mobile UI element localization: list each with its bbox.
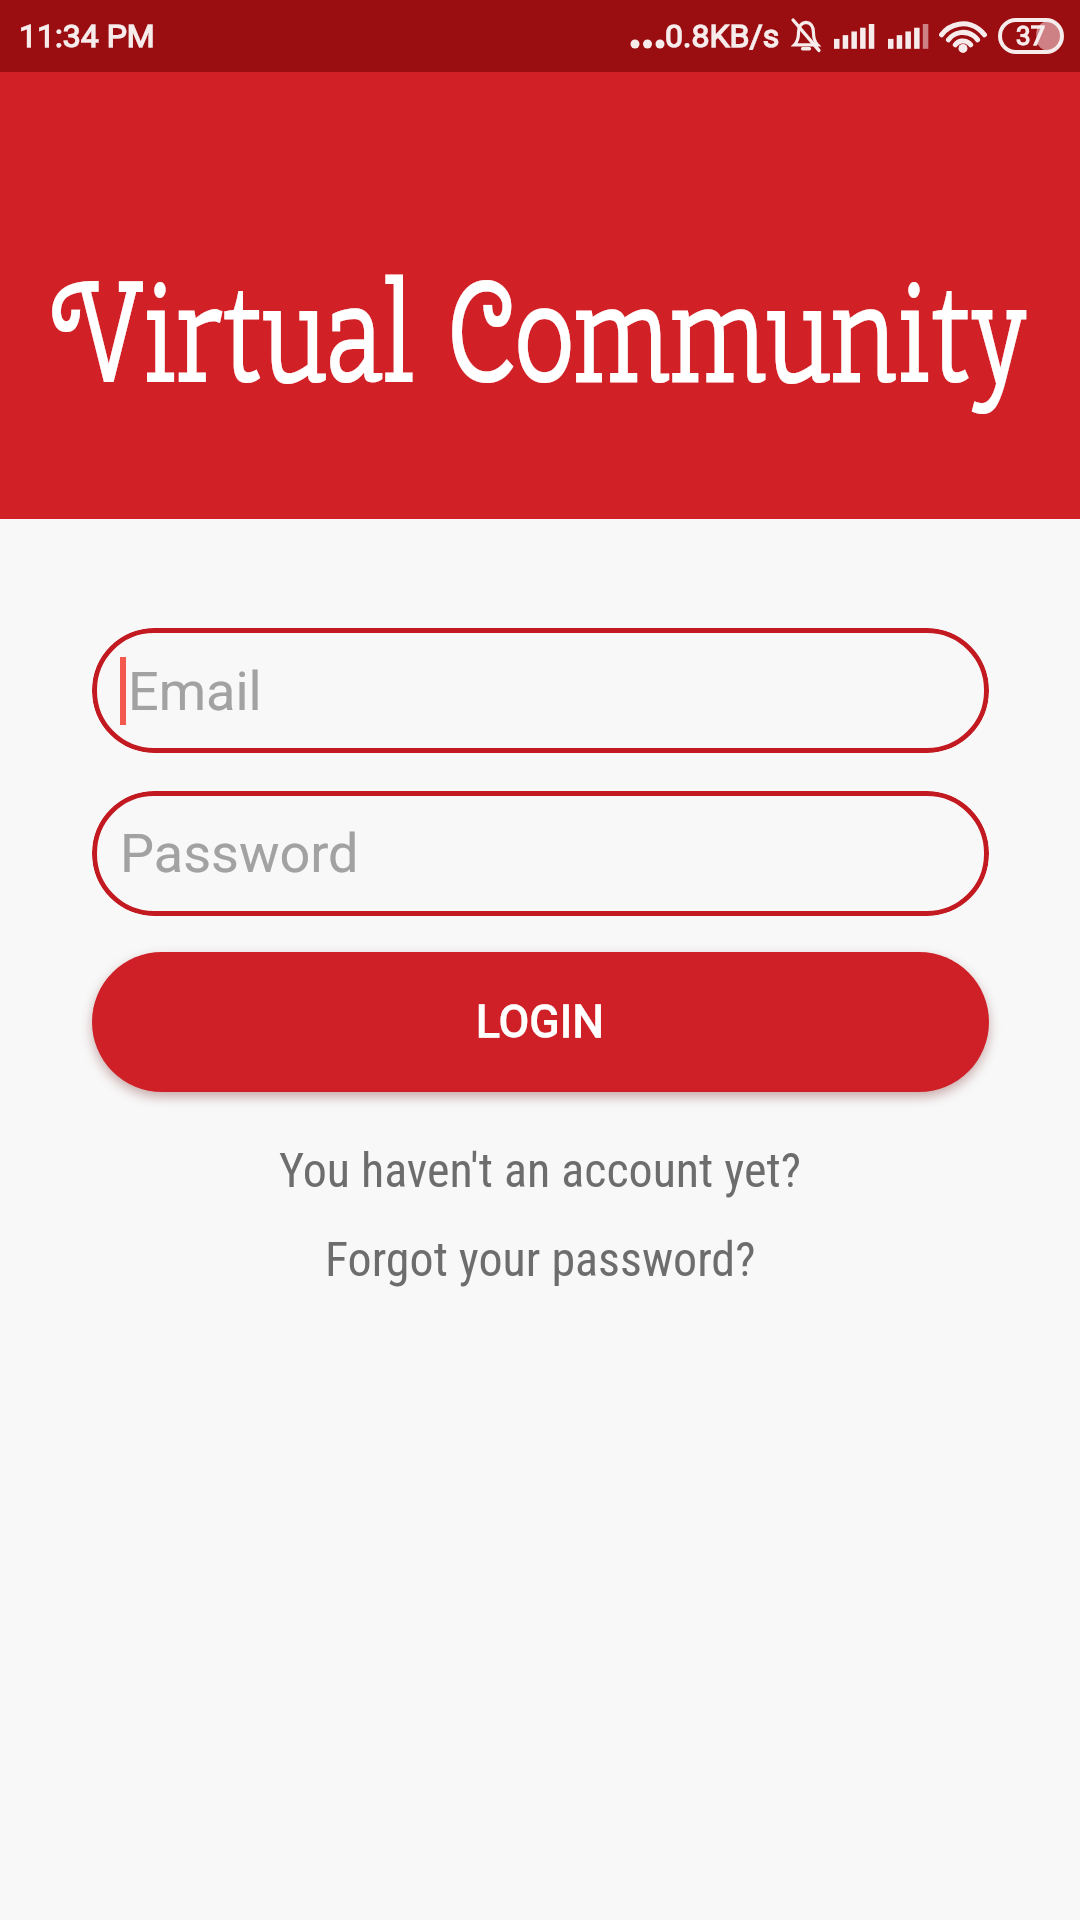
button[interactable]: Email: [92, 628, 989, 753]
staticText: 11:34 PM: [19, 17, 155, 55]
staticText: Password: [120, 822, 359, 885]
staticText: Email: [128, 660, 262, 723]
button[interactable]: Forgot your password?: [325, 1231, 756, 1287]
staticText: Virtual Community: [52, 235, 1028, 425]
staticText: 37: [1016, 21, 1046, 51]
staticText: LOGIN: [476, 996, 605, 1048]
staticText: 0.8KB/s: [665, 17, 780, 55]
button[interactable]: You haven't an account yet?: [279, 1142, 801, 1198]
button[interactable]: LOGIN: [92, 952, 989, 1092]
button[interactable]: Password: [92, 791, 989, 916]
